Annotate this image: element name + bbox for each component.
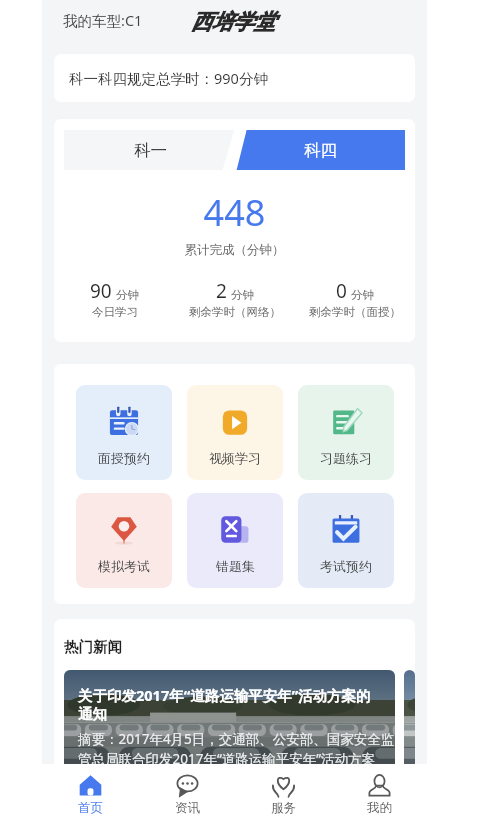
staticText: 剩余学时（网络） — [189, 305, 281, 319]
staticText: 90 — [90, 278, 112, 304]
staticText: 分钟 — [231, 288, 254, 302]
button[interactable]: 面授预约 — [76, 385, 172, 480]
staticText: 448 — [54, 188, 415, 237]
staticText: 资讯 — [175, 800, 200, 816]
staticText: 模拟考试 — [98, 558, 150, 574]
staticText: 我的车型:C1 — [63, 10, 143, 30]
staticText: 我的 — [367, 800, 392, 816]
staticText: 0 — [336, 278, 347, 304]
staticText: 视频学习 — [209, 450, 261, 466]
staticText: 错题集 — [216, 558, 255, 574]
staticText: 服务 — [271, 800, 296, 816]
staticText: 今日学习 — [92, 305, 138, 319]
staticText: 分钟 — [116, 288, 139, 302]
staticText: 热门新闻 — [64, 638, 122, 656]
staticText: 累计完成（分钟） — [54, 242, 415, 258]
button[interactable]: 科一 — [64, 130, 405, 170]
staticText: 剩余学时（面授） — [309, 305, 401, 319]
staticText: 科四 — [304, 140, 337, 161]
staticText: 习题练习 — [320, 450, 372, 466]
button[interactable]: 首页 — [42, 764, 139, 834]
staticText: 2 — [216, 278, 227, 304]
button[interactable]: 服务 — [235, 764, 331, 834]
button[interactable] — [404, 670, 415, 790]
button[interactable]: 我的 — [331, 764, 427, 834]
button[interactable]: 错题集 — [187, 493, 283, 588]
button[interactable]: 考试预约 — [298, 493, 394, 588]
button[interactable]: 视频学习 — [187, 385, 283, 480]
staticText: 西培学堂 — [191, 9, 275, 35]
staticText: 摘要：2017年4月5日，交通部、公安部、国家安全监管总局联合印发2017年“道… — [78, 730, 395, 787]
button[interactable]: 关于印发2017年“道路运输平安年”活动方案的通知 — [64, 670, 395, 790]
staticText: 科一科四规定总学时：990分钟 — [69, 68, 268, 88]
staticText: 关于印发2017年“道路运输平安年”活动方案的通知 — [78, 685, 378, 723]
button[interactable]: 模拟考试 — [76, 493, 172, 588]
staticText: 分钟 — [351, 288, 374, 302]
button[interactable]: 资讯 — [139, 764, 235, 834]
staticText: 面授预约 — [98, 450, 150, 466]
staticText: 考试预约 — [320, 558, 372, 574]
button[interactable]: 习题练习 — [298, 385, 394, 480]
staticText: 科一 — [134, 140, 167, 161]
staticText: 首页 — [78, 800, 103, 816]
